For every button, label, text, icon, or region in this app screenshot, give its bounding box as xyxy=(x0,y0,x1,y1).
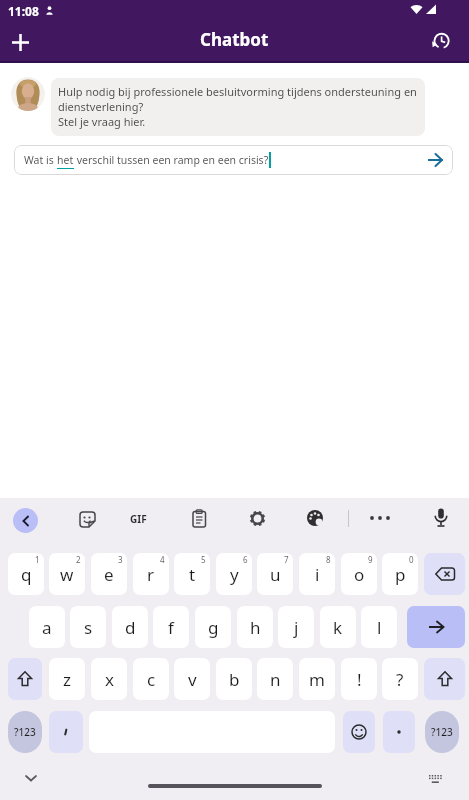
button[interactable] xyxy=(8,658,42,700)
button[interactable]: ? xyxy=(382,658,418,700)
button[interactable] xyxy=(433,508,449,529)
button[interactable]: v xyxy=(174,658,210,700)
staticText: ?123 xyxy=(431,725,453,739)
staticText: q xyxy=(21,563,32,586)
staticText: 3 xyxy=(118,554,123,565)
button[interactable]: j xyxy=(278,606,314,648)
staticText: ! xyxy=(357,668,362,691)
staticText: 5 xyxy=(201,554,206,565)
button[interactable]: ?123 xyxy=(8,711,42,753)
staticText: 4 xyxy=(160,554,165,565)
button[interactable]: a xyxy=(29,606,65,648)
staticText: 2 xyxy=(76,554,81,565)
button[interactable] xyxy=(368,508,392,528)
button[interactable]: ! xyxy=(341,658,377,700)
button[interactable] xyxy=(192,509,207,528)
staticText: o xyxy=(354,563,365,586)
button[interactable]: s xyxy=(70,606,106,648)
staticText: z xyxy=(63,668,71,691)
button[interactable]: z xyxy=(49,658,85,700)
button[interactable]: f xyxy=(153,606,189,648)
button[interactable] xyxy=(306,509,324,527)
button[interactable]: e xyxy=(91,553,127,595)
button[interactable]: k xyxy=(320,606,356,648)
staticText: g xyxy=(208,616,219,639)
staticText: a xyxy=(42,616,52,639)
staticText: Stel je vraag hier. xyxy=(58,114,146,129)
button[interactable]: u xyxy=(257,553,293,595)
button[interactable] xyxy=(79,511,96,528)
button[interactable]: d xyxy=(112,606,148,648)
staticText: f xyxy=(168,616,174,639)
staticText: Wat is xyxy=(24,153,57,167)
button[interactable]: GIF xyxy=(130,512,147,526)
button[interactable]: p xyxy=(382,553,418,595)
staticText: p xyxy=(395,563,406,586)
button[interactable]: l xyxy=(361,606,397,648)
staticText: l xyxy=(377,616,382,639)
staticText: het xyxy=(57,153,74,167)
button[interactable] xyxy=(343,711,375,753)
staticText: r xyxy=(147,563,155,586)
button[interactable]: c xyxy=(133,658,169,700)
staticText: ?123 xyxy=(14,725,36,739)
staticText: dienstverlening? xyxy=(58,99,144,114)
staticText: verschil tussen een ramp en een crisis? xyxy=(74,153,269,167)
staticText: k xyxy=(333,616,343,639)
button[interactable]: g xyxy=(195,606,231,648)
staticText: t xyxy=(189,563,196,586)
staticText: ? xyxy=(396,668,404,691)
staticText: i xyxy=(315,563,320,586)
staticText: c xyxy=(147,668,156,691)
button[interactable] xyxy=(383,711,415,753)
button[interactable] xyxy=(13,508,38,533)
button[interactable] xyxy=(49,711,83,753)
button[interactable]: b xyxy=(216,658,252,700)
button[interactable]: Wat is xyxy=(14,145,453,175)
staticText: 1 xyxy=(35,554,40,565)
button[interactable]: n xyxy=(257,658,293,700)
button[interactable]: t xyxy=(174,553,210,595)
staticText: 9 xyxy=(368,554,373,565)
button[interactable] xyxy=(424,553,465,595)
button[interactable]: m xyxy=(299,658,335,700)
button[interactable]: ?123 xyxy=(425,711,459,753)
button[interactable]: x xyxy=(91,658,127,700)
button[interactable] xyxy=(4,26,36,58)
staticText: y xyxy=(230,563,239,586)
button[interactable] xyxy=(424,658,465,700)
staticText: h xyxy=(250,616,261,639)
staticText: Hulp nodig bij professionele besluitvorm… xyxy=(58,84,417,99)
staticText: e xyxy=(104,563,114,586)
staticText: x xyxy=(105,668,114,691)
staticText: 6 xyxy=(243,554,248,565)
staticText: b xyxy=(229,668,240,691)
button[interactable]: r xyxy=(133,553,169,595)
button[interactable]: w xyxy=(49,553,85,595)
button[interactable] xyxy=(407,606,465,648)
button[interactable]: h xyxy=(237,606,273,648)
staticText: u xyxy=(270,563,281,586)
button[interactable] xyxy=(249,510,266,527)
staticText: m xyxy=(309,668,325,691)
staticText: 7 xyxy=(284,554,289,565)
button[interactable] xyxy=(424,24,457,57)
button[interactable] xyxy=(17,768,45,788)
staticText: n xyxy=(270,668,281,691)
staticText: 8 xyxy=(326,554,331,565)
staticText: GIF xyxy=(130,512,147,526)
staticText: v xyxy=(188,668,197,691)
button[interactable]: q xyxy=(8,553,44,595)
staticText: 0 xyxy=(409,554,414,565)
button[interactable]: o xyxy=(341,553,377,595)
staticText: j xyxy=(294,616,299,639)
staticText: d xyxy=(125,616,136,639)
staticText: 11:08 xyxy=(8,3,39,19)
button[interactable]: y xyxy=(216,553,252,595)
staticText: w xyxy=(60,563,74,586)
staticText: s xyxy=(84,616,93,639)
staticText: Chatbot xyxy=(200,28,269,51)
button[interactable]: i xyxy=(299,553,335,595)
